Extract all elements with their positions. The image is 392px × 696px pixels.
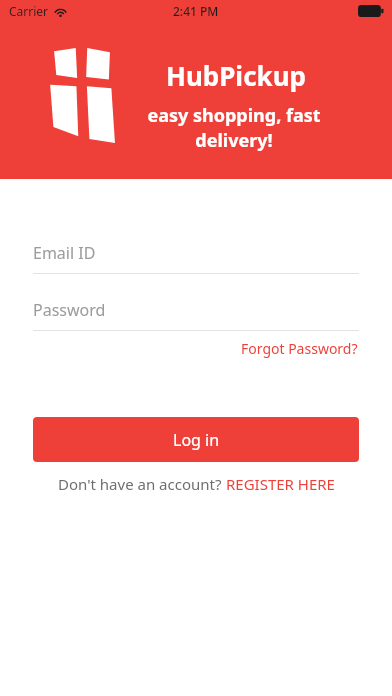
staticText: 2:41 PM [173,3,219,19]
button[interactable]: Log in [33,417,359,462]
staticText: Carrier [9,3,49,19]
staticText: Don't have an account? [58,474,226,494]
button[interactable]: Forgot Password? [240,337,359,360]
staticText: Forgot Password? [241,339,358,358]
staticText: HubPickup [116,58,356,93]
staticText: Email ID [33,242,96,264]
button[interactable]: Email ID [33,242,359,274]
staticText: easy shopping, fast delivery! [112,103,356,153]
staticText: Log in [173,429,220,451]
button[interactable]: Password [33,299,359,331]
staticText: Password [33,299,106,321]
staticText: REGISTER HERE [226,474,335,494]
button[interactable]: REGISTER HERE [226,474,335,494]
